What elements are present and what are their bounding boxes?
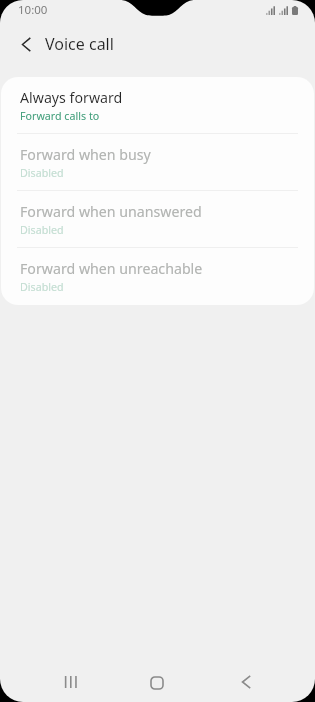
staticText: Forward when busy (20, 145, 151, 164)
staticText: 10:00 (18, 2, 48, 18)
staticText: Disabled (20, 280, 64, 295)
button[interactable]: Forward when busy (1, 134, 314, 191)
button[interactable]: Forward when unanswered (1, 191, 314, 248)
button[interactable]: Back (224, 660, 268, 702)
staticText: Forward calls to (20, 109, 100, 124)
button[interactable]: Always forward (1, 77, 314, 134)
staticText: Disabled (20, 223, 64, 238)
button[interactable]: Forward when unreachable (1, 248, 314, 305)
button[interactable]: Recent apps (48, 660, 92, 702)
staticText: Voice call (45, 33, 114, 55)
staticText: Forward when unanswered (20, 202, 202, 221)
button[interactable]: Navigate up (6, 25, 46, 63)
staticText: Forward when unreachable (20, 259, 203, 278)
button[interactable]: Home (135, 661, 179, 702)
staticText: Disabled (20, 166, 64, 181)
staticText: Always forward (20, 88, 123, 107)
